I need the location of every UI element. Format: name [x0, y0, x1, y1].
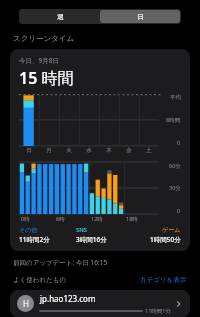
staticText: 3時間16分	[76, 235, 107, 244]
staticText: 前回のアップデート: 今日 16:15	[13, 258, 108, 267]
staticText: 0	[177, 139, 181, 146]
staticText: 11時間2分	[19, 235, 50, 244]
staticText: 火	[59, 147, 79, 154]
staticText: ゲーム	[162, 226, 181, 234]
staticText: 水	[79, 147, 99, 154]
button[interactable]: 週	[20, 10, 100, 23]
staticText: 平均	[170, 94, 181, 101]
staticText: 6時	[56, 215, 65, 223]
button[interactable]: 今日、9月8日	[19, 56, 181, 244]
staticText: 土	[139, 147, 159, 154]
staticText: 60分	[169, 162, 181, 170]
staticText: 週	[57, 12, 64, 21]
staticText: 18時	[126, 215, 138, 223]
staticText: その他	[19, 226, 38, 234]
staticText: 今日、9月8日	[19, 56, 59, 65]
other: 詳細を表示	[175, 300, 183, 308]
button[interactable]: カテゴリを表示	[140, 276, 187, 284]
staticText: 日	[19, 147, 39, 154]
staticText: 月	[39, 147, 59, 154]
staticText: 15 時間	[19, 67, 74, 89]
staticText: 8時間	[166, 116, 181, 124]
staticText: SNS	[76, 226, 88, 234]
staticText: jp.hao123.com	[40, 293, 96, 304]
button[interactable]: 日	[100, 10, 180, 23]
staticText: スクリーンタイム	[13, 34, 75, 43]
staticText: よく使われたもの	[13, 276, 67, 284]
staticText: 日	[137, 12, 144, 21]
staticText: H	[23, 298, 29, 309]
staticText: 金	[119, 147, 139, 154]
staticText: 0	[177, 207, 181, 214]
staticText: 12時	[91, 215, 103, 223]
button[interactable]: H	[10, 290, 190, 317]
staticText: 30分	[169, 184, 181, 192]
staticText: 0時	[21, 215, 30, 223]
staticText: 木	[99, 147, 119, 154]
staticText: 11時間1分	[145, 307, 171, 315]
staticText: 1時間50分	[150, 235, 181, 244]
staticText: カテゴリを表示	[140, 276, 187, 284]
